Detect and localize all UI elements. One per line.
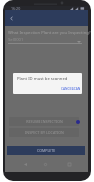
button[interactable]: Navigate up xyxy=(6,13,16,23)
button[interactable]: Choose plant xyxy=(73,36,85,48)
staticText: 16:20 xyxy=(11,6,21,10)
staticText: RESUME INSPECTION xyxy=(26,119,63,124)
button[interactable]: SCAN xyxy=(69,85,82,93)
staticText: SCAN xyxy=(72,87,81,91)
button[interactable]: Pending items xyxy=(76,120,80,124)
staticText: INSPECT BY LOCATION xyxy=(25,130,64,135)
button[interactable]: Recent apps xyxy=(64,159,75,170)
staticText: COMPLETE xyxy=(37,148,56,153)
staticText: CANCEL xyxy=(61,87,74,91)
button[interactable]: Back xyxy=(20,159,31,170)
staticText: Plant ID must be scanned xyxy=(17,76,68,82)
button[interactable]: RESUME INSPECTION xyxy=(9,117,79,126)
button[interactable]: CANCEL xyxy=(58,85,77,93)
button[interactable]: INSPECT BY LOCATION xyxy=(9,128,79,137)
button[interactable]: COMPLETE xyxy=(7,146,85,155)
staticText: What Inspection Plant are you Inspecting… xyxy=(8,30,91,36)
staticText: Sel0001 xyxy=(8,37,24,43)
